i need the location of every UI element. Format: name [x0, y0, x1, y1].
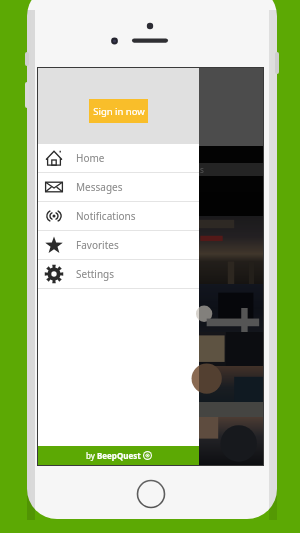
- button[interactable]: Favorites: [38, 231, 199, 259]
- button[interactable]: Messages: [38, 173, 199, 201]
- staticText: Favorites: [76, 238, 119, 252]
- staticText: Notifications: [76, 209, 136, 223]
- staticText: BeepQuest: [97, 450, 141, 461]
- staticText: Settings: [76, 267, 115, 281]
- button[interactable]: Settings: [38, 260, 199, 288]
- button[interactable]: Notifications: [38, 202, 199, 230]
- button[interactable]: Home: [38, 144, 199, 172]
- button[interactable]: by: [38, 446, 199, 465]
- staticText: s: [200, 164, 204, 175]
- staticText: Home: [76, 151, 105, 165]
- staticText: by: [86, 450, 97, 461]
- button[interactable]: Sign in now: [89, 99, 148, 123]
- staticText: Sign in now: [93, 105, 145, 118]
- staticText: Messages: [76, 180, 123, 194]
